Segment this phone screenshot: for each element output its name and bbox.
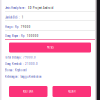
staticText: Total Belanja : 79000.0 [5,56,36,59]
staticText: Keterangan : Tunggu Kembalian [5,75,41,78]
button[interactable]: PROSES [9,42,91,52]
staticText: PROSES [46,46,53,49]
staticText: Jenis Handphone : [5,6,26,10]
button[interactable]: KELUAR [52,86,91,97]
staticText: Uang Kembali : 21000.0 [5,62,38,66]
staticText: Uang Bayar : Rp [5,34,25,38]
staticText: Bonus : Keyboard [5,68,27,72]
button[interactable]: RESET DATA [9,86,47,97]
staticText: 79000 [21,25,31,29]
staticText: KELUAR [68,90,75,93]
staticText: 3D Project Android [28,6,54,10]
staticText: Harga : Rp [5,25,19,29]
staticText: RESET DATA [23,90,34,93]
staticText: 100000 [27,34,39,38]
staticText: Jumlah Beli : [5,16,20,19]
staticText: 1 [22,16,24,19]
